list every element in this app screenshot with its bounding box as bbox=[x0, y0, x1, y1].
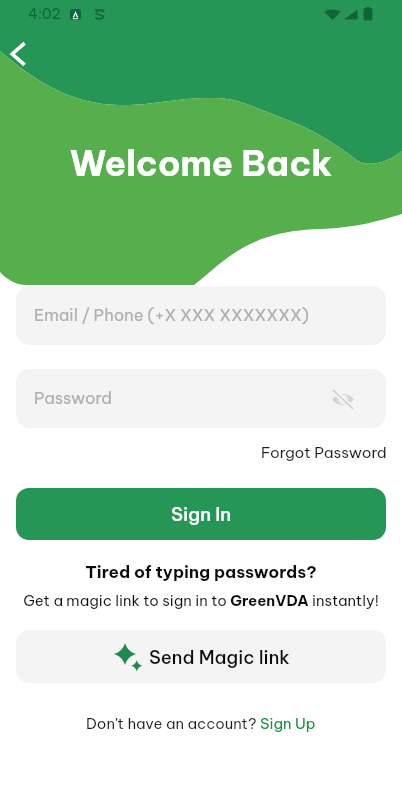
staticText: Welcome Back bbox=[0, 141, 402, 185]
staticText: Sign Up bbox=[260, 714, 316, 733]
button[interactable]: Forgot Password bbox=[261, 443, 387, 462]
staticText: Get a magic link to sign in to GreenVDA … bbox=[0, 591, 402, 610]
staticText: Password bbox=[34, 388, 112, 409]
button[interactable]: Email / Phone (+X XXX XXXXXXX) bbox=[16, 286, 386, 345]
button[interactable]: Show password bbox=[326, 382, 360, 416]
button[interactable]: Sign In bbox=[16, 488, 386, 540]
staticText: Email / Phone (+X XXX XXXXXXX) bbox=[34, 305, 309, 326]
staticText: Sign In bbox=[171, 502, 232, 526]
button[interactable]: Don't have an account? bbox=[86, 714, 316, 733]
staticText: Don't have an account? bbox=[86, 714, 260, 733]
staticText: Tired of typing passwords? bbox=[0, 561, 402, 582]
button[interactable]: Back bbox=[0, 36, 36, 72]
button[interactable]: Password bbox=[16, 369, 386, 428]
staticText: Send Magic link bbox=[149, 646, 290, 669]
button[interactable]: Send Magic link bbox=[16, 630, 386, 683]
staticText: 4:02 bbox=[28, 5, 61, 23]
